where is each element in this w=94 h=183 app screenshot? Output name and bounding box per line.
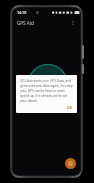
button[interactable]: More options	[69, 19, 77, 27]
button[interactable]: Reset GPS data	[65, 158, 76, 169]
staticText: 14:10	[17, 10, 27, 15]
button[interactable]: OK	[65, 104, 74, 111]
staticText: GPS Aid	[17, 20, 34, 26]
staticText: GPS Aid resets your GPS Data, and genera…	[20, 79, 74, 102]
staticText: OK	[67, 105, 72, 110]
